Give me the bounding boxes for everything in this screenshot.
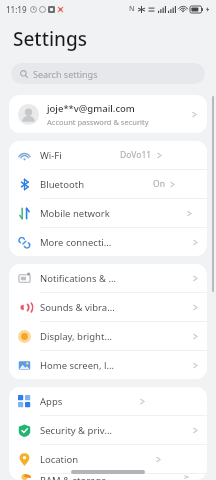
- staticText: Display, brightness & eye protection: [40, 330, 116, 343]
- staticText: Sounds & vibration: [40, 301, 116, 314]
- button[interactable]: Apps: [9, 387, 207, 415]
- button[interactable]: Sounds & vibration: [9, 293, 207, 321]
- staticText: 11:19: [6, 4, 27, 15]
- button[interactable]: More connections: [9, 228, 207, 256]
- button[interactable]: joje**v@gmail.com: [9, 95, 207, 133]
- button[interactable]: Display, brightness & eye protection: [9, 322, 207, 350]
- staticText: Home screen, lock screen & wallpaper: [40, 359, 116, 372]
- staticText: Security & privacy: [40, 424, 116, 437]
- button[interactable]: Search settings: [11, 63, 205, 84]
- button[interactable]: Mobile network: [9, 199, 207, 227]
- button[interactable]: RAM & storage: [9, 474, 207, 480]
- staticText: Search settings: [33, 68, 98, 80]
- staticText: DoVo11: [120, 149, 152, 161]
- button[interactable]: Location: [9, 445, 207, 473]
- button[interactable]: Home screen, lock screen & wallpaper: [9, 351, 207, 379]
- button[interactable]: Notifications & status bar: [9, 264, 207, 292]
- staticText: Bluetooth: [40, 178, 85, 191]
- staticText: joje**v@gmail.com: [47, 102, 135, 115]
- staticText: Account password & security: [47, 117, 149, 127]
- button[interactable]: Bluetooth: [9, 170, 207, 198]
- button[interactable]: Wi-Fi: [9, 141, 207, 169]
- staticText: N: [129, 4, 135, 14]
- staticText: Apps: [40, 395, 63, 408]
- staticText: Notifications & status bar: [40, 272, 116, 285]
- staticText: Settings: [13, 26, 87, 52]
- staticText: On: [153, 178, 165, 190]
- staticText: Mobile network: [40, 207, 110, 220]
- staticText: Wi-Fi: [40, 149, 62, 162]
- staticText: Location: [40, 453, 79, 466]
- staticText: RAM & storage: [40, 474, 107, 480]
- staticText: More connections: [40, 236, 116, 249]
- button[interactable]: Security & privacy: [9, 416, 207, 444]
